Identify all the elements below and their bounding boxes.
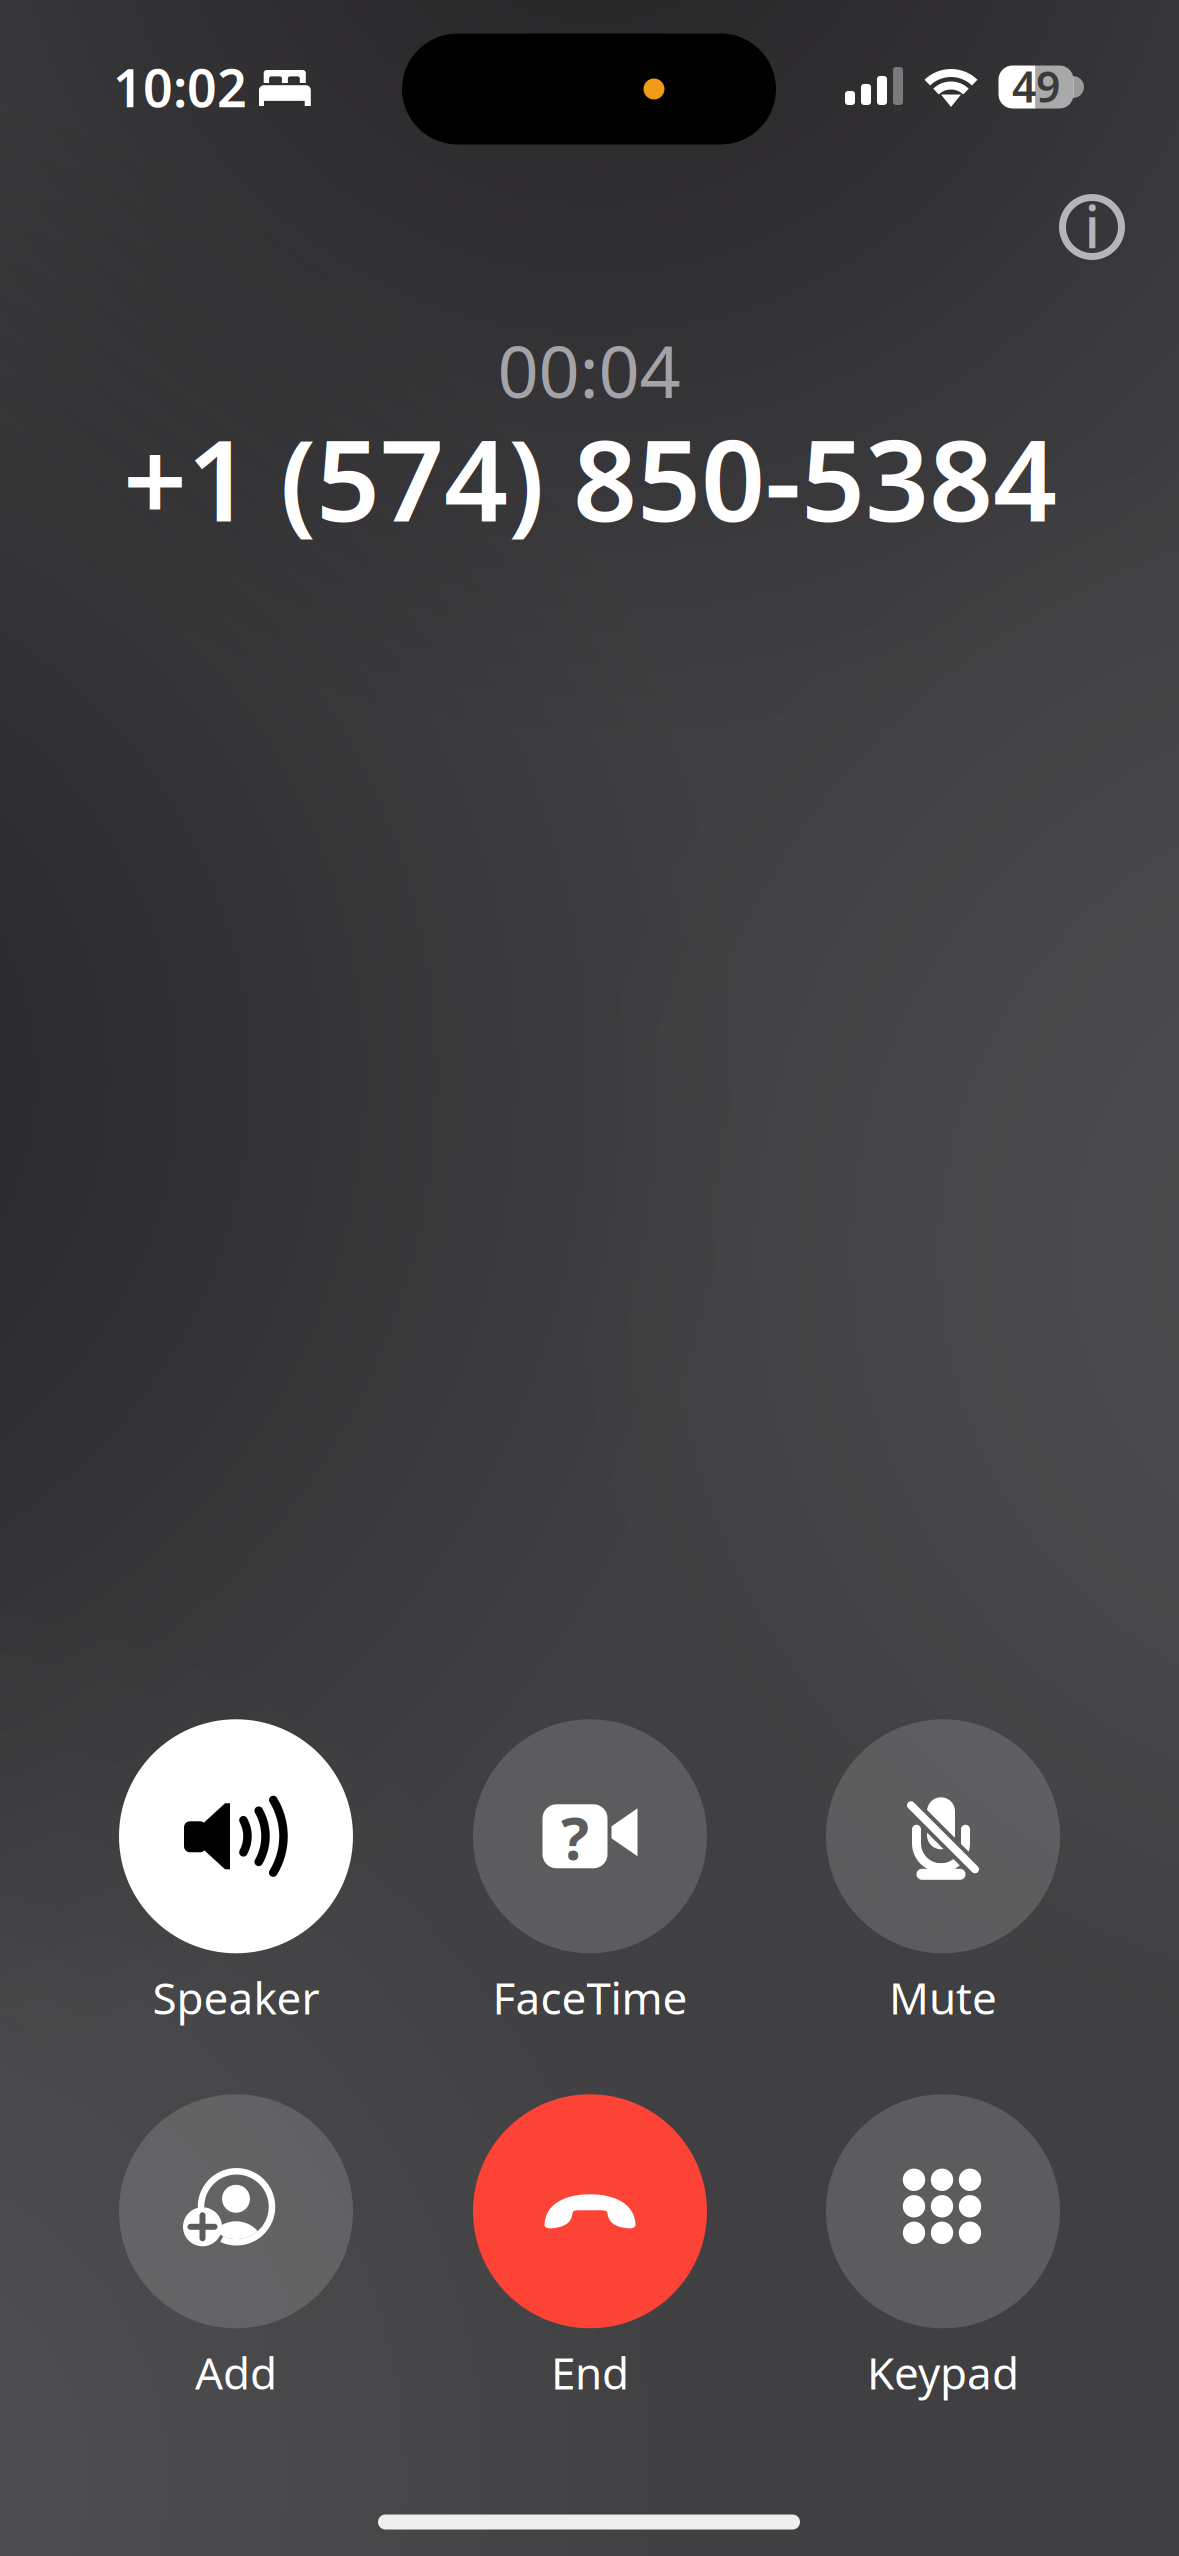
button[interactable]: Keypad: [788, 2094, 1098, 2402]
staticText: Speaker: [152, 1968, 319, 2027]
button[interactable]: Mute: [788, 1719, 1098, 2027]
button[interactable]: Add: [81, 2094, 391, 2402]
staticText: 49: [1012, 58, 1060, 114]
staticText: 00:04: [497, 322, 680, 418]
button[interactable]: End: [435, 2094, 745, 2402]
staticText: Mute: [889, 1968, 997, 2027]
staticText: i: [1084, 188, 1099, 264]
button[interactable]: Call info: [1044, 179, 1140, 275]
staticText: Add: [195, 2343, 277, 2402]
staticText: ?: [561, 1798, 589, 1876]
button[interactable]: Speaker: [81, 1719, 391, 2027]
staticText: Keypad: [867, 2343, 1019, 2402]
staticText: End: [551, 2343, 629, 2402]
staticText: FaceTime: [492, 1968, 687, 2027]
button[interactable]: ?: [435, 1719, 745, 2027]
staticText: 10:02: [113, 52, 247, 122]
staticText: +1 (574) 850-5384: [123, 404, 1057, 552]
